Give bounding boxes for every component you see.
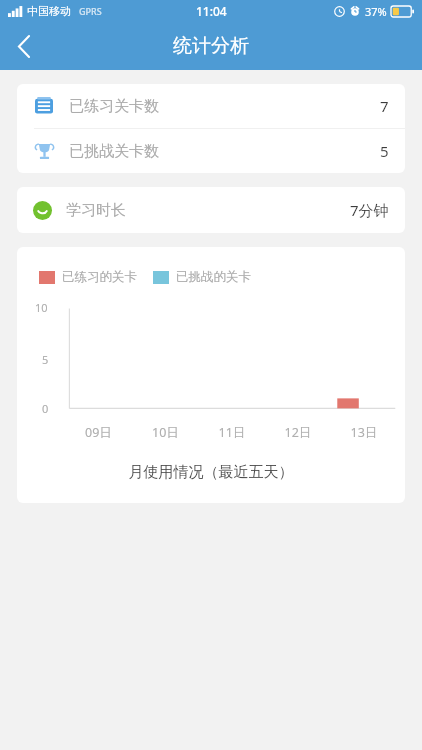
staticText: 37%	[365, 4, 387, 19]
staticText: 统计分析	[173, 34, 249, 58]
staticText: 13日	[331, 424, 397, 441]
staticText: 已挑战关卡数	[69, 142, 159, 161]
staticText: 已练习关卡数	[69, 97, 159, 116]
staticText: 中国移动	[27, 4, 71, 18]
staticText: GPRS	[79, 5, 102, 17]
staticText: 已练习的关卡	[62, 269, 137, 285]
staticText: 11日	[199, 424, 265, 441]
staticText: 12日	[265, 424, 331, 441]
staticText: 5	[380, 141, 389, 161]
staticText: 7	[380, 96, 389, 116]
button[interactable]: 已挑战关卡数	[17, 129, 405, 173]
staticText: 11:04	[196, 3, 227, 19]
button[interactable]: 已练习关卡数	[17, 84, 405, 128]
staticText: 月使用情况（最近五天）	[17, 463, 405, 482]
button[interactable]: Back	[0, 22, 48, 70]
button[interactable]: 学习时长	[17, 187, 405, 233]
staticText: 10日	[132, 424, 199, 441]
staticText: 09日	[65, 424, 132, 441]
staticText: 学习时长	[66, 201, 126, 220]
staticText: 10	[35, 300, 48, 315]
staticText: 0	[42, 401, 49, 416]
staticText: 7分钟	[350, 200, 389, 220]
staticText: 5	[42, 352, 49, 367]
staticText: 已挑战的关卡	[176, 269, 251, 285]
